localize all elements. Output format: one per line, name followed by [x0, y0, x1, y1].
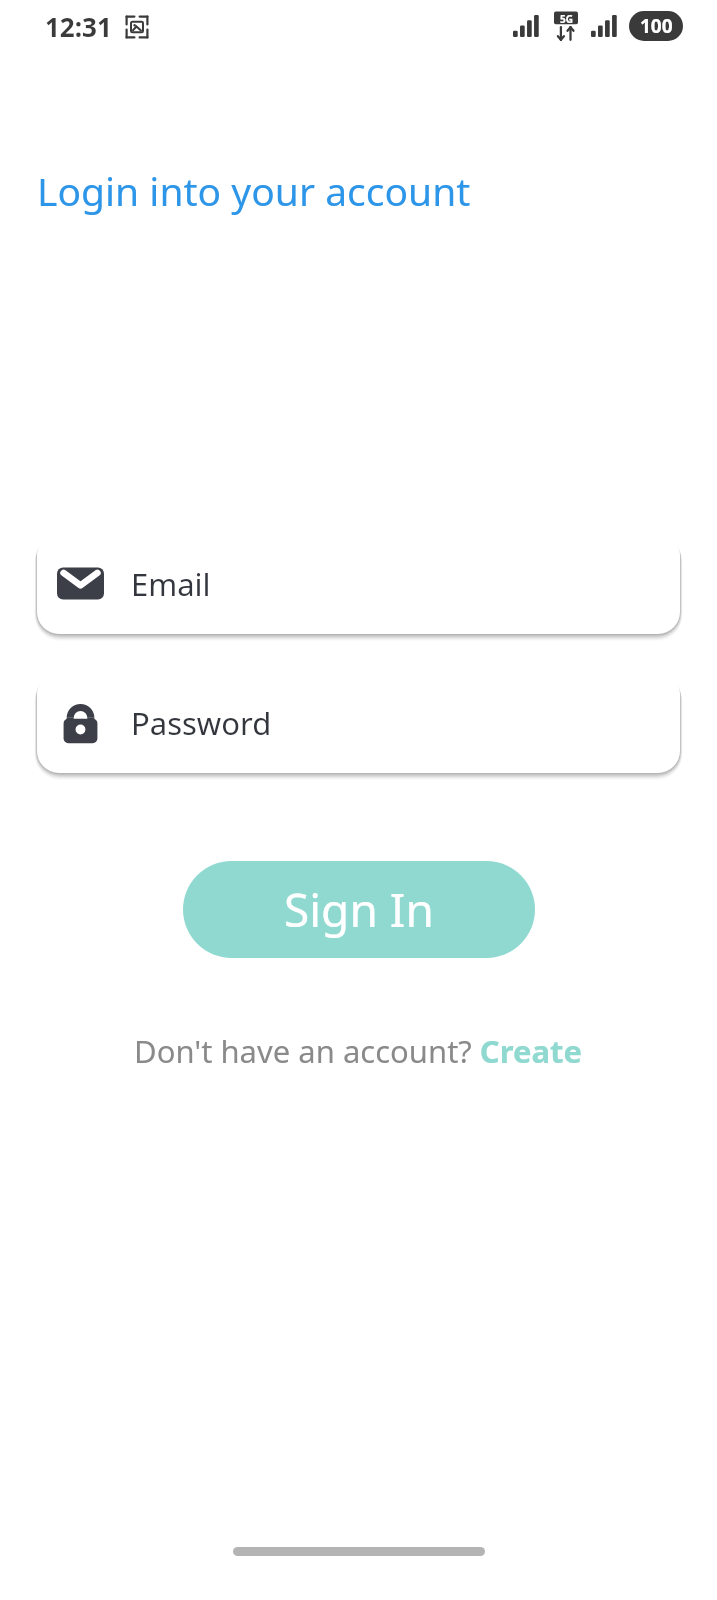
- staticText: Email: [131, 563, 211, 605]
- other: Password: [57, 699, 104, 746]
- staticText: 5G: [560, 12, 573, 26]
- staticText: Password: [131, 702, 272, 744]
- other: Email: [57, 560, 104, 607]
- staticText: Sign In: [284, 878, 434, 941]
- staticText: 100: [640, 13, 673, 39]
- staticText: 12:31: [45, 9, 112, 44]
- button[interactable]: Sign In: [183, 861, 535, 958]
- button[interactable]: Password: [37, 672, 680, 773]
- staticText: Don't have an account? Create: [134, 1030, 583, 1072]
- staticText: Login into your account: [37, 164, 471, 217]
- button[interactable]: Email: [37, 533, 680, 634]
- button[interactable]: Don't have an account? Create: [126, 1026, 591, 1076]
